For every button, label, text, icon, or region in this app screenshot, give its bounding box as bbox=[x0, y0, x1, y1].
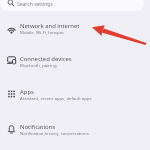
staticText: Connected devices bbox=[20, 55, 72, 63]
staticText: Network and internet bbox=[20, 22, 80, 30]
staticText: Notification history, conversations bbox=[20, 130, 89, 136]
staticText: Bluetooth, pairing bbox=[20, 62, 57, 68]
button[interactable] bbox=[0, 46, 150, 80]
button[interactable] bbox=[0, 0, 144, 11]
staticText: Notifications bbox=[20, 123, 56, 131]
staticText: Assistant, recent apps, default apps bbox=[20, 95, 92, 101]
staticText: Mobile, Wi-Fi, hotspot bbox=[20, 29, 64, 35]
button[interactable] bbox=[0, 13, 150, 46]
button[interactable] bbox=[0, 112, 150, 150]
button[interactable] bbox=[0, 80, 150, 112]
staticText: Search settings bbox=[17, 1, 53, 8]
staticText: Apps bbox=[20, 88, 34, 96]
